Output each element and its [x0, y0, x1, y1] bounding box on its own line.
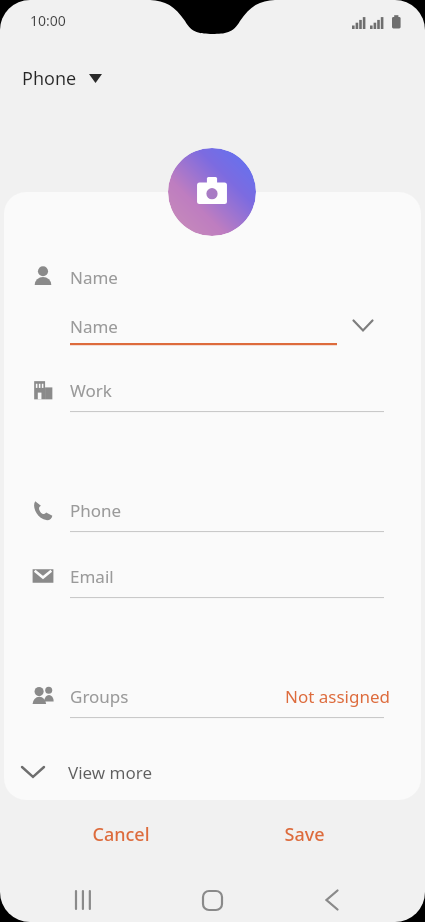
button[interactable]: Recent apps: [62, 878, 106, 922]
button[interactable]: Phone: [14, 60, 110, 97]
staticText: Phone: [70, 499, 122, 522]
button[interactable]: Back: [310, 878, 354, 922]
staticText: Save: [284, 822, 325, 847]
button[interactable]: Not assigned: [240, 683, 390, 709]
staticText: View more: [68, 761, 153, 784]
button[interactable]: View more: [20, 755, 220, 789]
staticText: Name: [70, 315, 118, 338]
staticText: Email: [70, 565, 114, 588]
staticText: Phone: [22, 66, 77, 91]
button[interactable]: Save: [232, 814, 377, 854]
staticText: Name: [70, 266, 118, 289]
button[interactable]: Name: [60, 310, 400, 352]
staticText: Work: [70, 379, 112, 402]
staticText: Not assigned: [285, 685, 390, 708]
button[interactable]: Home: [190, 878, 234, 922]
button[interactable]: Add photo: [168, 148, 256, 236]
button[interactable]: Cancel: [48, 814, 193, 854]
staticText: 10:00: [30, 11, 66, 30]
staticText: Groups: [70, 685, 129, 708]
staticText: Cancel: [92, 822, 150, 847]
